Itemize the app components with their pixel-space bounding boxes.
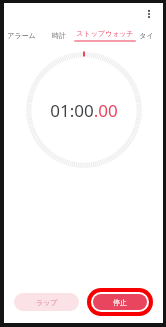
button[interactable]: タイマー [136,25,157,45]
button[interactable]: ストップウォッチ [74,25,136,45]
button[interactable]: ラップ [14,293,79,311]
staticText: 時計 [52,31,66,40]
staticText: ストップウォッチ [76,29,134,38]
staticText: 停止 [113,298,127,307]
staticText: アラーム [7,31,36,40]
staticText: ラップ [36,298,58,307]
button[interactable]: 停止 [93,294,147,310]
button[interactable]: アラーム [0,25,44,45]
button[interactable]: 時計 [44,25,74,45]
button[interactable]: More options [141,6,157,22]
staticText: タイマー [136,31,157,40]
staticText: 01:00.00 [50,99,118,122]
